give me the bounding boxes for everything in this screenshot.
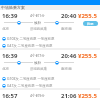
staticText: ¥255.5 xyxy=(78,52,97,60)
staticText: 候补 xyxy=(34,61,42,66)
staticText: 16:57 xyxy=(2,92,18,100)
staticText: 抢票 xyxy=(87,22,94,26)
button[interactable]: 中转换乘方案 xyxy=(0,5,100,10)
staticText: 16:39 xyxy=(2,52,18,60)
staticText: 4小时7分 xyxy=(30,53,45,58)
staticText: 济南西换乘 xyxy=(30,67,47,71)
staticText: 16:39 xyxy=(2,12,18,20)
staticText: ¥255.5 xyxy=(78,12,97,20)
staticText: 20:40 xyxy=(61,12,77,20)
button[interactable]: 16:39 xyxy=(0,10,100,48)
staticText: 北京 xyxy=(2,67,10,72)
staticText: ¥255.5 xyxy=(78,92,97,100)
staticText: 中转换乘方案 xyxy=(1,5,25,10)
staticText: G103次 二等座有票 一等座有票 xyxy=(7,76,55,81)
staticText: G41次 二等座有票 一等座有票 xyxy=(7,43,53,48)
staticText: G41次 二等座有票 一等座有票 xyxy=(7,83,53,88)
staticText: G103次 二等座有票 一等座有票 xyxy=(7,36,55,41)
staticText: 南京南 xyxy=(61,27,72,32)
button[interactable]: 16:39 xyxy=(0,50,100,88)
staticText: 候补 xyxy=(34,21,42,26)
staticText: 20:46 xyxy=(61,52,77,60)
staticText: 21:06 xyxy=(61,92,77,100)
staticText: 4小时9分 xyxy=(30,93,45,98)
staticText: 北京 xyxy=(2,27,10,32)
button[interactable]: 16:57 xyxy=(0,90,100,100)
staticText: 南京南 xyxy=(61,67,72,72)
staticText: 4小时1分 xyxy=(30,13,45,18)
staticText: 济南西换乘 xyxy=(30,27,47,31)
button[interactable]: 抢票 xyxy=(83,21,98,26)
